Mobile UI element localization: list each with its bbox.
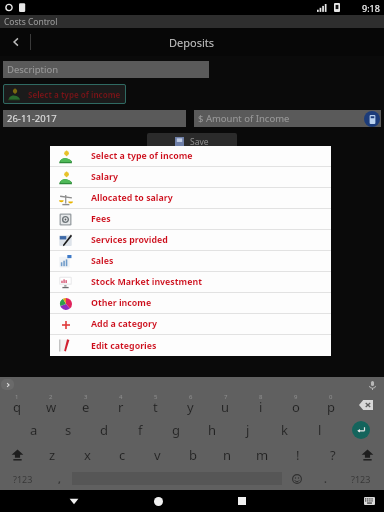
button[interactable]: Back: [6, 32, 26, 52]
button[interactable]: Add a category: [50, 314, 331, 334]
button[interactable]: j: [230, 417, 266, 442]
button[interactable]: Backspace: [348, 392, 384, 417]
button[interactable]: !: [280, 442, 315, 467]
staticText: d: [100, 421, 108, 439]
button[interactable]: Salary: [50, 167, 331, 187]
button[interactable]: b: [175, 442, 210, 467]
staticText: Select a type of income: [28, 89, 121, 100]
button[interactable]: 26-11-2017: [3, 110, 186, 127]
button[interactable]: z: [34, 442, 70, 467]
staticText: e: [82, 398, 90, 416]
staticText: c: [119, 446, 126, 464]
button[interactable]: g: [158, 417, 194, 442]
button[interactable]: Hide keyboard: [63, 490, 85, 512]
staticText: ?: [330, 446, 336, 464]
staticText: x: [84, 446, 91, 464]
button[interactable]: Select a type of income: [50, 146, 331, 166]
button[interactable]: Enter: [338, 417, 384, 442]
button[interactable]: c: [105, 442, 140, 467]
staticText: v: [154, 446, 161, 464]
staticText: w: [46, 398, 57, 416]
button[interactable]: 7: [208, 392, 243, 417]
staticText: 2: [49, 393, 53, 401]
button[interactable]: d: [86, 417, 122, 442]
button[interactable]: Calculator: [364, 111, 380, 127]
button[interactable]: 2: [34, 392, 68, 417]
button[interactable]: l: [302, 417, 338, 442]
button[interactable]: 5: [138, 392, 173, 417]
staticText: Save: [190, 136, 209, 148]
button[interactable]: Allocated to salary: [50, 188, 331, 208]
button[interactable]: 3: [68, 392, 103, 417]
button[interactable]: 4: [103, 392, 138, 417]
staticText: u: [221, 398, 230, 416]
staticText: 1: [15, 393, 19, 401]
button[interactable]: Description: [3, 61, 209, 78]
button[interactable]: ?: [315, 442, 350, 467]
button[interactable]: ?123: [0, 467, 46, 490]
button[interactable]: Services provided: [50, 230, 331, 250]
staticText: b: [189, 446, 197, 464]
staticText: p: [327, 398, 335, 416]
button[interactable]: Edit categories: [50, 335, 331, 356]
staticText: t: [153, 398, 158, 416]
staticText: Costs Control: [4, 16, 58, 28]
staticText: .: [324, 472, 327, 486]
button[interactable]: 1: [0, 392, 34, 417]
button[interactable]: 8: [243, 392, 278, 417]
button[interactable]: s: [51, 417, 86, 442]
button[interactable]: Other income: [50, 293, 331, 313]
button[interactable]: a: [16, 417, 51, 442]
button[interactable]: k: [266, 417, 302, 442]
staticText: Add a category: [91, 318, 157, 330]
button[interactable]: x: [70, 442, 105, 467]
staticText: a: [30, 421, 38, 439]
staticText: Services provided: [91, 234, 168, 246]
staticText: Stock Market investment: [91, 276, 202, 288]
staticText: 3: [84, 393, 88, 401]
button[interactable]: h: [194, 417, 230, 442]
button[interactable]: Stock Market investment: [50, 272, 331, 292]
staticText: q: [13, 398, 21, 416]
button[interactable]: Shift: [0, 442, 34, 467]
button[interactable]: v: [140, 442, 175, 467]
staticText: !: [296, 446, 300, 464]
button[interactable]: f: [122, 417, 158, 442]
staticText: o: [292, 398, 300, 416]
staticText: 9: [294, 393, 298, 401]
button[interactable]: Save: [147, 133, 237, 150]
button[interactable]: Recents: [231, 490, 253, 512]
staticText: ?123: [13, 473, 33, 485]
button[interactable]: Keyboard switcher: [358, 490, 380, 512]
staticText: k: [281, 421, 288, 439]
button[interactable]: Sales: [50, 251, 331, 271]
staticText: Edit categories: [91, 340, 157, 352]
button[interactable]: 0: [313, 392, 348, 417]
button[interactable]: Shift: [350, 442, 384, 467]
staticText: 7: [224, 393, 228, 401]
staticText: s: [65, 421, 72, 439]
button[interactable]: Emoji: [282, 467, 312, 490]
staticText: Fees: [91, 213, 111, 225]
staticText: j: [246, 421, 250, 439]
staticText: Deposits: [169, 35, 215, 50]
button[interactable]: Select a type of income: [3, 84, 126, 104]
button[interactable]: n: [210, 442, 245, 467]
button[interactable]: Fees: [50, 209, 331, 229]
staticText: h: [208, 421, 217, 439]
staticText: l: [318, 421, 322, 439]
button[interactable]: m: [245, 442, 280, 467]
button[interactable]: 6: [173, 392, 208, 417]
staticText: Sales: [91, 255, 114, 267]
staticText: 26-11-2017: [7, 112, 57, 125]
staticText: ?123: [351, 473, 371, 485]
button[interactable]: ?123: [338, 467, 384, 490]
button[interactable]: 9: [278, 392, 313, 417]
button[interactable]: More suggestions: [1, 379, 14, 390]
button[interactable]: Voice input: [366, 379, 378, 391]
button[interactable]: Home: [147, 490, 169, 512]
button[interactable]: $ Amount of Income: [194, 110, 381, 127]
